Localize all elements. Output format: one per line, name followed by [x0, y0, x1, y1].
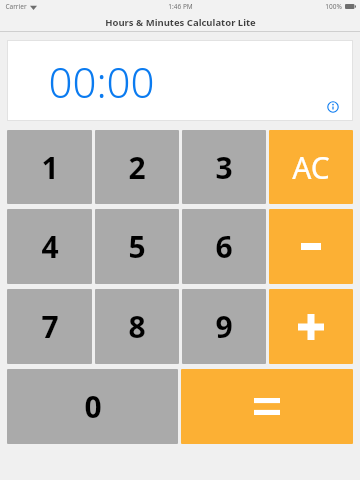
staticText: AC [292, 147, 330, 188]
button[interactable]: 5 [95, 209, 179, 284]
staticText: 7 [41, 306, 59, 347]
button[interactable]: 2 [95, 130, 179, 204]
button[interactable]: 6 [182, 209, 266, 284]
staticText: 1:46 PM [168, 2, 193, 11]
button[interactable]: Minus [269, 209, 353, 284]
button[interactable]: 1 [7, 130, 92, 204]
staticText: 4 [41, 226, 59, 267]
staticText: 00:00 [48, 53, 155, 110]
button[interactable]: Plus [269, 289, 353, 364]
button[interactable]: 9 [182, 289, 266, 364]
staticText: 3 [215, 147, 233, 188]
button[interactable]: 7 [7, 289, 92, 364]
staticText: 0 [84, 386, 102, 427]
staticText: 6 [215, 226, 233, 267]
button[interactable]: Equals [181, 369, 353, 444]
staticText: 9 [215, 306, 233, 347]
staticText: 5 [128, 226, 146, 267]
button[interactable]: 4 [7, 209, 92, 284]
button[interactable]: 8 [95, 289, 179, 364]
staticText: 2 [128, 147, 146, 188]
button[interactable]: AC [269, 130, 353, 204]
staticText: 100% [325, 2, 342, 11]
staticText: Hours & Minutes Calculator Lite [105, 16, 256, 29]
button[interactable]: 3 [182, 130, 266, 204]
button[interactable]: 0 [7, 369, 178, 444]
button[interactable]: Info [326, 100, 340, 114]
staticText: Carrier [5, 2, 27, 11]
staticText: 8 [128, 306, 146, 347]
staticText: 1 [41, 147, 59, 188]
